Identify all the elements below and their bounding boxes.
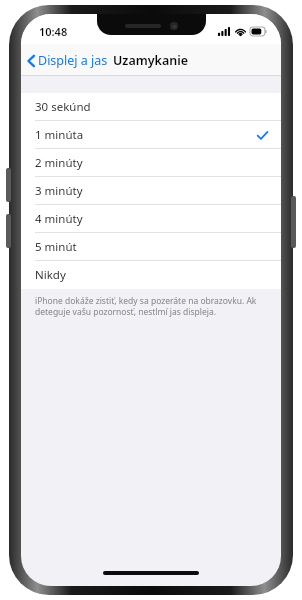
staticText: 4 minúty <box>35 211 83 227</box>
staticText: iPhone dokáže zistiť, kedy sa pozeráte n… <box>35 295 261 317</box>
staticText: 2 minúty <box>35 155 83 171</box>
button[interactable]: Nikdy <box>21 261 281 289</box>
staticText: 1 minúta <box>35 127 84 143</box>
other: Selected <box>257 131 268 140</box>
button[interactable]: 2 minúty <box>21 149 281 177</box>
button[interactable]: Displej a jas <box>21 48 116 73</box>
staticText: 10:48 <box>39 24 68 39</box>
button[interactable]: 3 minúty <box>21 177 281 205</box>
button[interactable]: 1 minúta <box>21 121 281 149</box>
staticText: Displej a jas <box>38 52 108 69</box>
staticText: 5 minút <box>35 239 77 255</box>
button[interactable]: 5 minút <box>21 233 281 261</box>
button[interactable]: 4 minúty <box>21 205 281 233</box>
staticText: Uzamykanie <box>113 52 189 69</box>
button[interactable]: 30 sekúnd <box>21 93 281 121</box>
staticText: 3 minúty <box>35 183 83 199</box>
staticText: 30 sekúnd <box>35 99 91 115</box>
staticText: Nikdy <box>35 267 66 283</box>
